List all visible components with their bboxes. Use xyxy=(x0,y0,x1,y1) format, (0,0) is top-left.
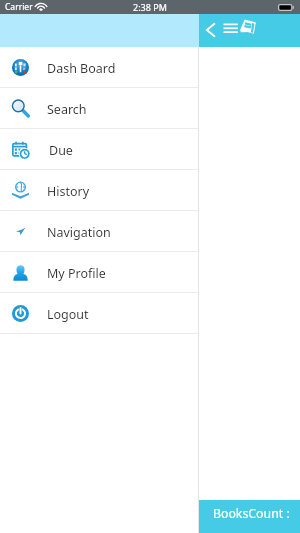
button[interactable]: History xyxy=(0,170,199,211)
button[interactable]: Dash Board xyxy=(0,47,199,88)
button[interactable]: Logout xyxy=(0,293,199,334)
button[interactable]: Due xyxy=(0,129,199,170)
staticText: Due xyxy=(49,142,73,159)
button[interactable]: BooksCount : xyxy=(199,500,300,533)
staticText: My Profile xyxy=(47,265,106,282)
staticText: Logout xyxy=(47,306,89,323)
button[interactable]: Back xyxy=(201,19,219,41)
button[interactable]: Books menu xyxy=(221,17,257,39)
staticText: 2:38 PM xyxy=(133,1,167,13)
staticText: Search xyxy=(47,101,87,118)
button[interactable]: My Profile xyxy=(0,252,199,293)
staticText: BooksCount : xyxy=(213,505,290,522)
staticText: Dash Board xyxy=(47,60,116,77)
staticText: History xyxy=(47,183,90,200)
staticText: Navigation xyxy=(47,224,111,241)
button[interactable]: Navigation xyxy=(0,211,199,252)
button[interactable]: Search xyxy=(0,88,199,129)
staticText: Carrier xyxy=(5,1,33,13)
